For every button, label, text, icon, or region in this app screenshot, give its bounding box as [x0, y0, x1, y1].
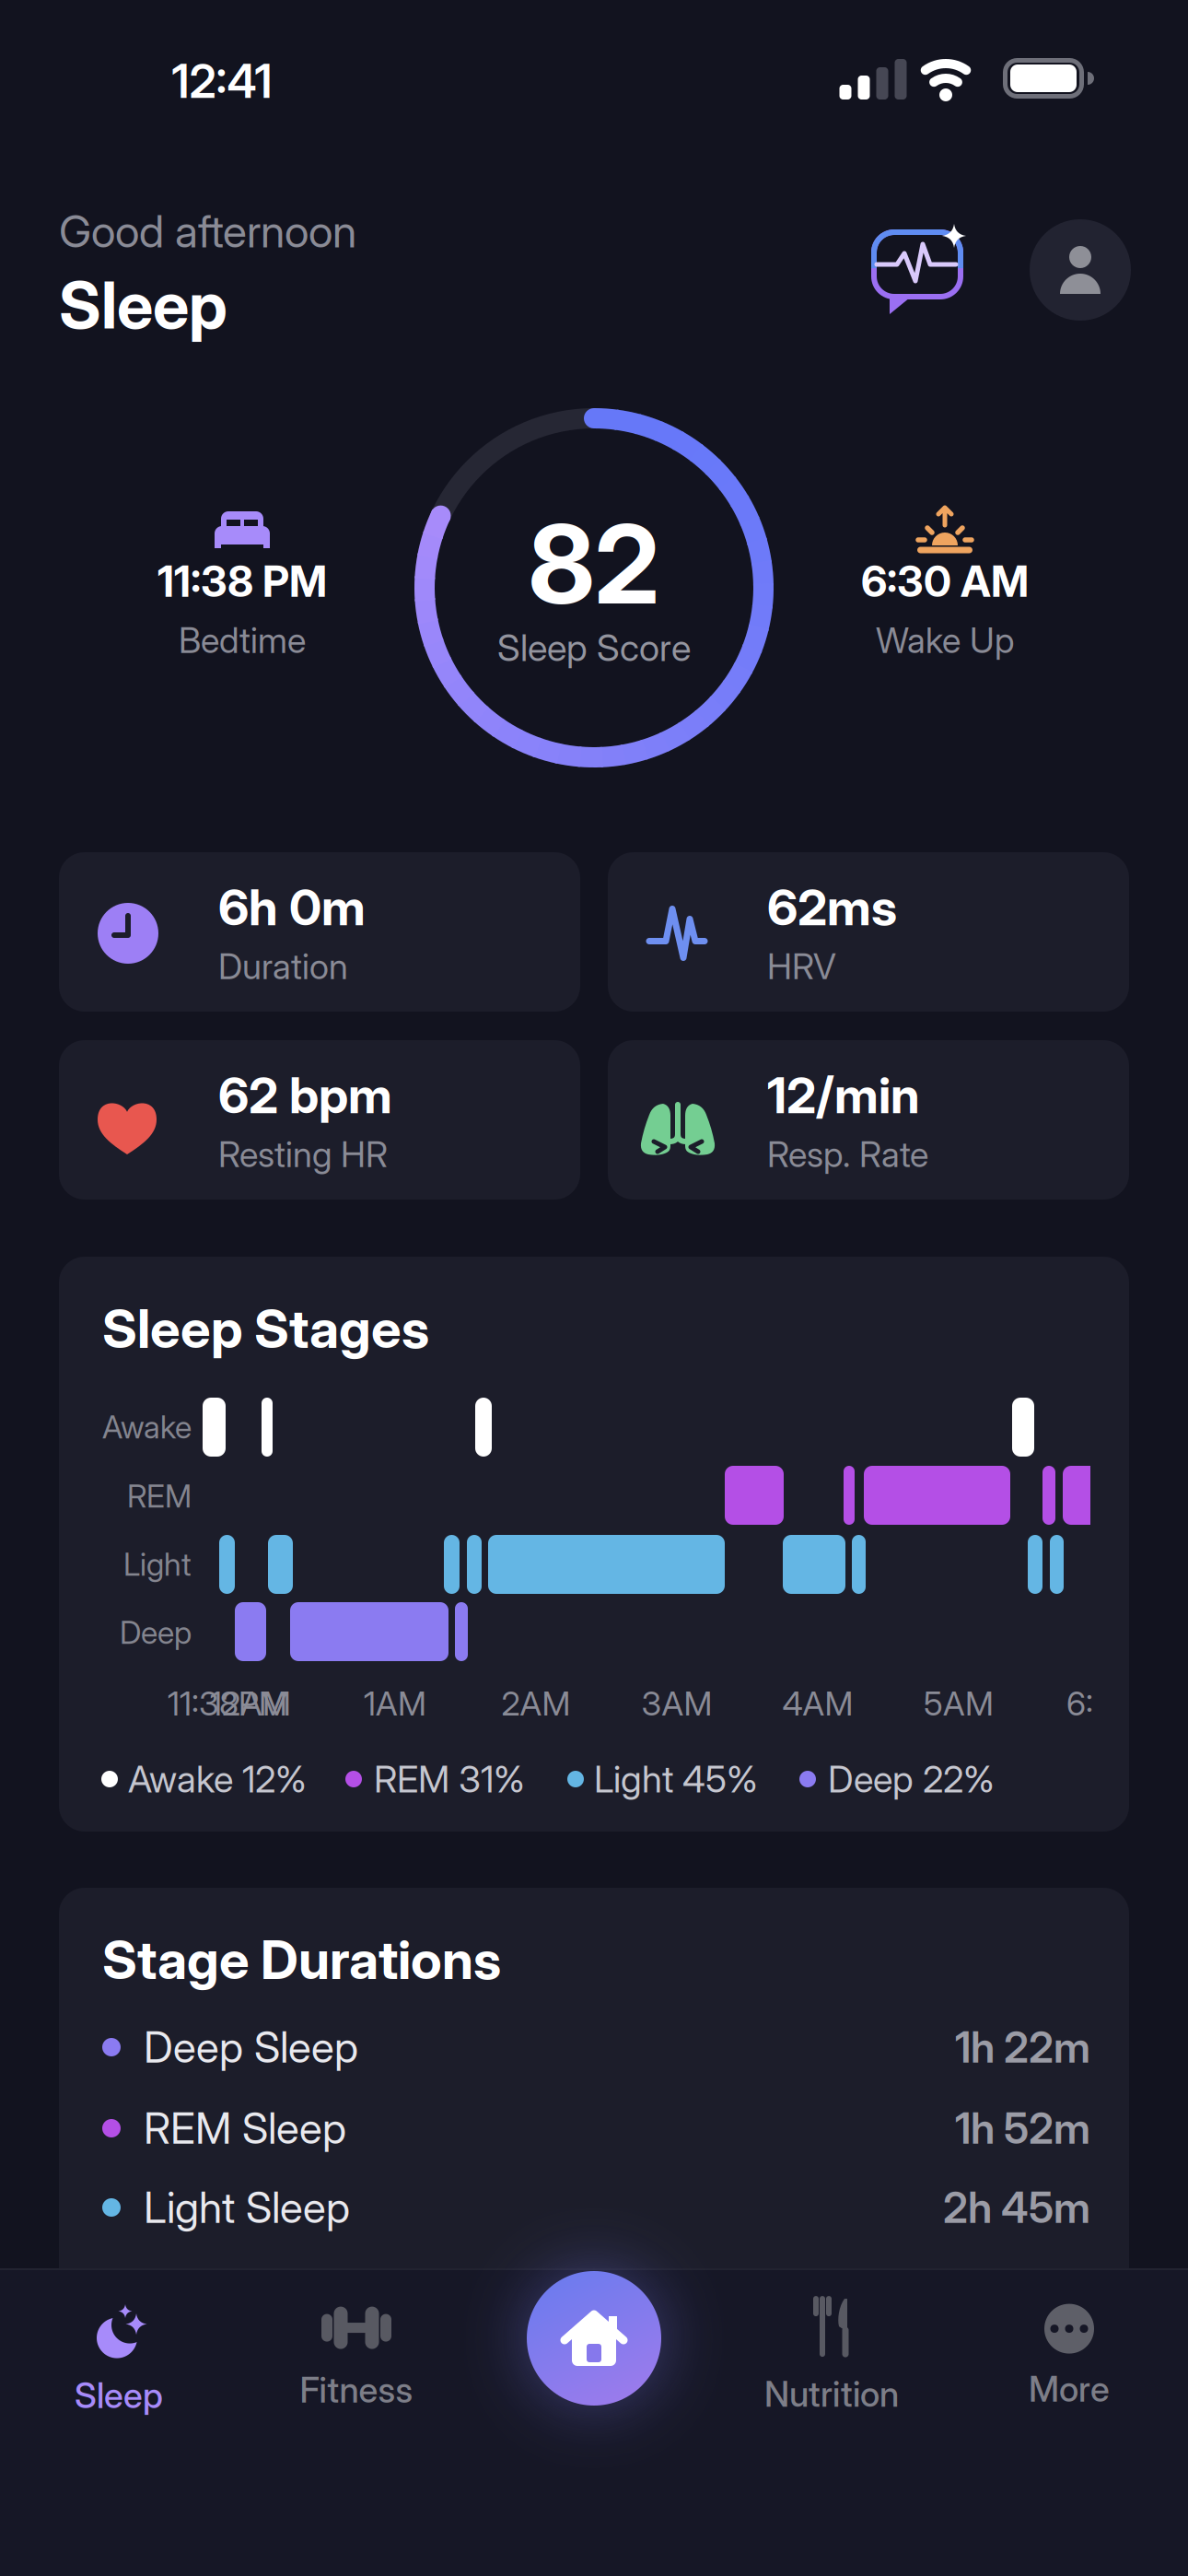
staticText: Stage Durations — [102, 1928, 501, 1991]
staticText: Light — [123, 1546, 192, 1583]
staticText: 2h 45m — [943, 2183, 1090, 2233]
staticText: REM — [127, 1478, 192, 1515]
staticText: Awake 12% — [128, 1757, 307, 1801]
staticText: Good afternoon — [59, 205, 356, 257]
staticText: 1h 22m — [955, 2022, 1090, 2072]
staticText: Deep — [120, 1614, 192, 1651]
staticText: Sleep — [59, 267, 227, 343]
staticText: Resting HR — [218, 1134, 388, 1175]
button[interactable]: More — [968, 2288, 1171, 2426]
button[interactable]: Nutrition — [721, 2288, 942, 2426]
staticText: Sleep Stages — [102, 1297, 429, 1360]
staticText: Bedtime — [179, 620, 306, 661]
staticText: 12:41 — [172, 54, 272, 108]
staticText: Duration — [218, 946, 348, 987]
staticText: REM 31% — [374, 1757, 525, 1801]
staticText: Sleep — [75, 2375, 163, 2416]
button[interactable]: Fitness — [255, 2289, 458, 2428]
staticText: 82 — [528, 500, 660, 628]
staticText: 1AM — [364, 1684, 426, 1723]
staticText: 12/min — [767, 1066, 920, 1124]
staticText: Deep 22% — [828, 1757, 995, 1801]
staticText: Wake Up — [876, 620, 1014, 661]
staticText: 6:30 AM — [861, 556, 1029, 606]
button[interactable]: Home — [527, 2271, 661, 2406]
staticText: Resp. Rate — [767, 1134, 928, 1175]
staticText: 11:38PM — [168, 1684, 287, 1723]
staticText: REM Sleep — [144, 2103, 346, 2153]
staticText: 1h 52m — [955, 2103, 1090, 2153]
staticText: 2AM — [501, 1684, 571, 1723]
staticText: 5AM — [924, 1684, 994, 1723]
staticText: HRV — [767, 946, 836, 987]
button[interactable]: Profile — [1030, 219, 1131, 321]
staticText: 11:38 PM — [157, 556, 327, 606]
button[interactable]: Sleep — [17, 2289, 220, 2428]
staticText: 4AM — [782, 1684, 853, 1723]
staticText: Awake — [102, 1409, 192, 1446]
staticText: More — [1029, 2368, 1110, 2410]
staticText: Nutrition — [764, 2373, 899, 2415]
button[interactable]: AI Assistant — [869, 228, 965, 318]
staticText: 3AM — [641, 1684, 712, 1723]
staticText: Deep Sleep — [144, 2022, 358, 2072]
staticText: 62ms — [767, 878, 897, 936]
staticText: Fitness — [300, 2369, 413, 2411]
staticText: 6h 0m — [218, 878, 366, 936]
staticText: Light Sleep — [144, 2183, 350, 2233]
staticText: 12AM — [210, 1684, 291, 1723]
staticText: Sleep Score — [497, 626, 691, 669]
staticText: 62 bpm — [218, 1066, 392, 1124]
staticText: Light 45% — [594, 1757, 758, 1801]
staticText: 6:30AM — [1066, 1684, 1183, 1723]
